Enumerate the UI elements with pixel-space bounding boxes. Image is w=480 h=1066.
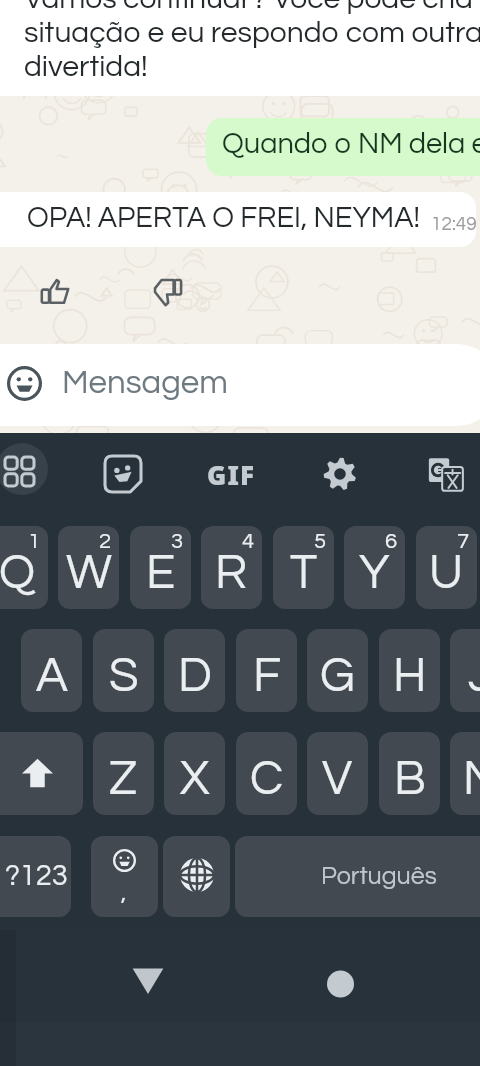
button[interactable]: Thumbs down: [152, 277, 182, 307]
staticText: T: [290, 549, 318, 598]
staticText: H: [393, 652, 427, 701]
staticText: S: [109, 652, 139, 701]
staticText: Mensagem: [62, 366, 228, 400]
staticText: 1: [28, 530, 41, 553]
staticText: A: [36, 652, 68, 701]
button[interactable]: A: [21, 629, 82, 712]
button[interactable]: G: [307, 629, 368, 712]
staticText: V: [322, 755, 353, 804]
staticText: situação e eu respondo com outra: [24, 17, 480, 48]
button[interactable]: E: [130, 526, 191, 609]
staticText: B: [394, 755, 426, 804]
staticText: W: [66, 549, 112, 598]
staticText: ?123: [5, 861, 68, 891]
button[interactable]: U: [416, 526, 477, 609]
button[interactable]: B: [379, 732, 440, 815]
button[interactable]: Change language: [163, 836, 230, 917]
staticText: 5: [314, 530, 327, 553]
button[interactable]: Shift: [0, 732, 83, 815]
button[interactable]: [0, 0, 480, 96]
staticText: GIF: [207, 457, 256, 492]
button[interactable]: F: [236, 629, 297, 712]
button[interactable]: H: [379, 629, 440, 712]
button[interactable]: Q: [0, 526, 48, 609]
staticText: N: [463, 755, 480, 804]
button[interactable]: Emoji: [91, 836, 158, 917]
button[interactable]: Keyboard modes: [0, 443, 48, 495]
button[interactable]: X: [164, 732, 225, 815]
staticText: 12:49: [431, 214, 477, 234]
staticText: U: [429, 549, 464, 598]
button[interactable]: J: [450, 629, 480, 712]
staticText: Y: [359, 549, 390, 598]
staticText: divertida!: [24, 51, 148, 82]
staticText: R: [215, 549, 248, 598]
button[interactable]: ?123: [0, 836, 71, 917]
button[interactable]: R: [201, 526, 262, 609]
staticText: 2: [99, 530, 112, 553]
staticText: 3: [171, 530, 184, 553]
button[interactable]: C: [236, 732, 297, 815]
staticText: D: [178, 652, 212, 701]
staticText: F: [253, 652, 281, 701]
button[interactable]: Stickers: [100, 451, 146, 497]
staticText: Q: [0, 549, 36, 598]
staticText: OPA! APERTA O FREI, NEYMA!: [27, 203, 420, 233]
button[interactable]: Translate: [422, 451, 468, 497]
button[interactable]: W: [58, 526, 119, 609]
staticText: E: [146, 549, 176, 598]
button[interactable]: Settings: [317, 451, 363, 497]
staticText: 7: [457, 530, 470, 553]
button[interactable]: Z: [93, 732, 154, 815]
staticText: Português: [321, 863, 437, 889]
button[interactable]: Hide keyboard: [122, 962, 174, 1014]
button[interactable]: [0, 192, 476, 247]
button[interactable]: [0, 344, 480, 426]
staticText: Z: [109, 755, 138, 804]
button[interactable]: Português: [235, 836, 480, 917]
button[interactable]: N: [450, 732, 480, 815]
button[interactable]: Thumbs up: [40, 277, 70, 307]
staticText: Quando o NM dela e: [222, 129, 480, 159]
staticText: J: [468, 652, 480, 701]
button[interactable]: Y: [344, 526, 405, 609]
staticText: X: [180, 755, 210, 804]
staticText: 6: [385, 530, 398, 553]
staticText: ,: [121, 880, 127, 905]
button[interactable]: Home: [315, 958, 367, 1010]
staticText: Vamos continuar? Você pode cria: [24, 0, 473, 14]
button[interactable]: T: [273, 526, 334, 609]
button[interactable]: [206, 118, 480, 176]
button[interactable]: D: [164, 629, 225, 712]
button[interactable]: S: [93, 629, 154, 712]
staticText: C: [250, 755, 284, 804]
staticText: 4: [242, 530, 255, 553]
staticText: G: [320, 652, 355, 701]
button[interactable]: GIF: [200, 451, 262, 497]
button[interactable]: V: [307, 732, 368, 815]
